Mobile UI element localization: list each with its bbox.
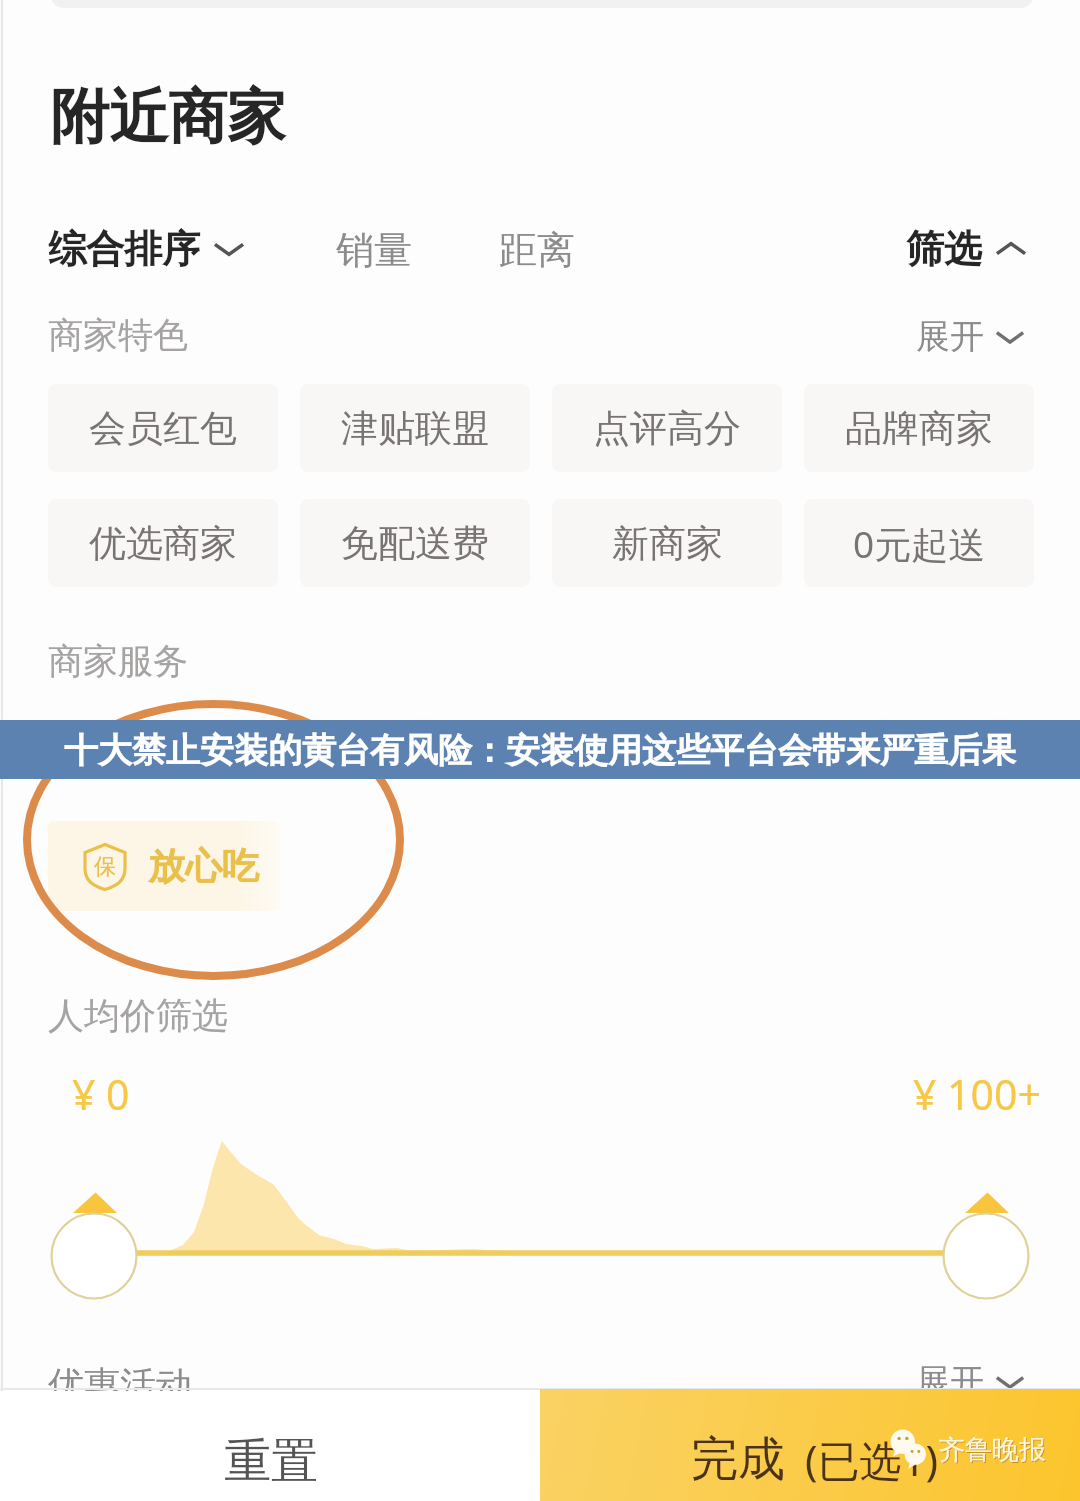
staticText: 品牌商家: [845, 405, 993, 452]
staticText: 0元起送: [853, 518, 986, 569]
staticText: 点评高分: [593, 405, 741, 452]
staticText: 距离: [499, 226, 575, 274]
button[interactable]: 新商家: [552, 499, 782, 587]
staticText: 重置: [224, 1432, 318, 1491]
staticText: 附近商家: [50, 80, 286, 154]
staticText: 筛选: [906, 225, 982, 273]
staticText: 会员红包: [89, 405, 237, 452]
button[interactable]: 重置: [0, 1391, 540, 1501]
button[interactable]: 品牌商家: [804, 384, 1034, 472]
staticText: 放心吃: [148, 843, 259, 890]
button[interactable]: 保: [48, 821, 280, 911]
staticText: 津贴联盟: [341, 405, 489, 452]
staticText: ¥ 0: [72, 1066, 130, 1122]
staticText: 完成: [691, 1430, 785, 1489]
staticText: 人均价筛选: [48, 993, 228, 1038]
button[interactable]: 会员红包: [48, 384, 278, 472]
staticText: 新商家: [612, 520, 723, 567]
button[interactable]: Maximum price handle: [943, 1214, 1029, 1300]
button[interactable]: Minimum price handle: [51, 1214, 137, 1300]
staticText: 优选商家: [89, 520, 237, 567]
button[interactable]: 优选商家: [48, 499, 278, 587]
staticText: 保: [94, 853, 116, 881]
button[interactable]: 津贴联盟: [300, 384, 530, 472]
button[interactable]: 展开: [900, 303, 1040, 370]
staticText: 综合排序: [48, 225, 200, 273]
staticText: 销量: [336, 226, 412, 274]
staticText: 展开: [916, 315, 984, 358]
staticText: ¥ 100+: [913, 1066, 1041, 1122]
staticText: (已选1): [805, 1431, 939, 1488]
staticText: 十大禁止安装的黄台有风险：安装使用这些平台会带来严重后果: [64, 729, 1016, 772]
staticText: 展开: [916, 1360, 984, 1403]
button[interactable]: 筛选: [890, 211, 1042, 287]
button[interactable]: 点评高分: [552, 384, 782, 472]
staticText: 齐鲁晚报: [938, 1433, 1046, 1467]
button[interactable]: 免配送费: [300, 499, 530, 587]
staticText: 齐鲁晚报: [939, 1434, 1047, 1468]
button[interactable]: 距离: [483, 212, 591, 288]
staticText: 商家特色: [48, 313, 188, 357]
staticText: 优惠活动: [48, 1362, 192, 1407]
button[interactable]: 综合排序: [32, 211, 260, 287]
button[interactable]: 0元起送: [804, 499, 1034, 587]
button[interactable]: 完成: [540, 1389, 1080, 1501]
staticText: 商家服务: [48, 639, 188, 683]
staticText: 免配送费: [341, 520, 489, 567]
button[interactable]: 销量: [320, 212, 428, 288]
button[interactable]: 展开: [900, 1348, 1040, 1415]
